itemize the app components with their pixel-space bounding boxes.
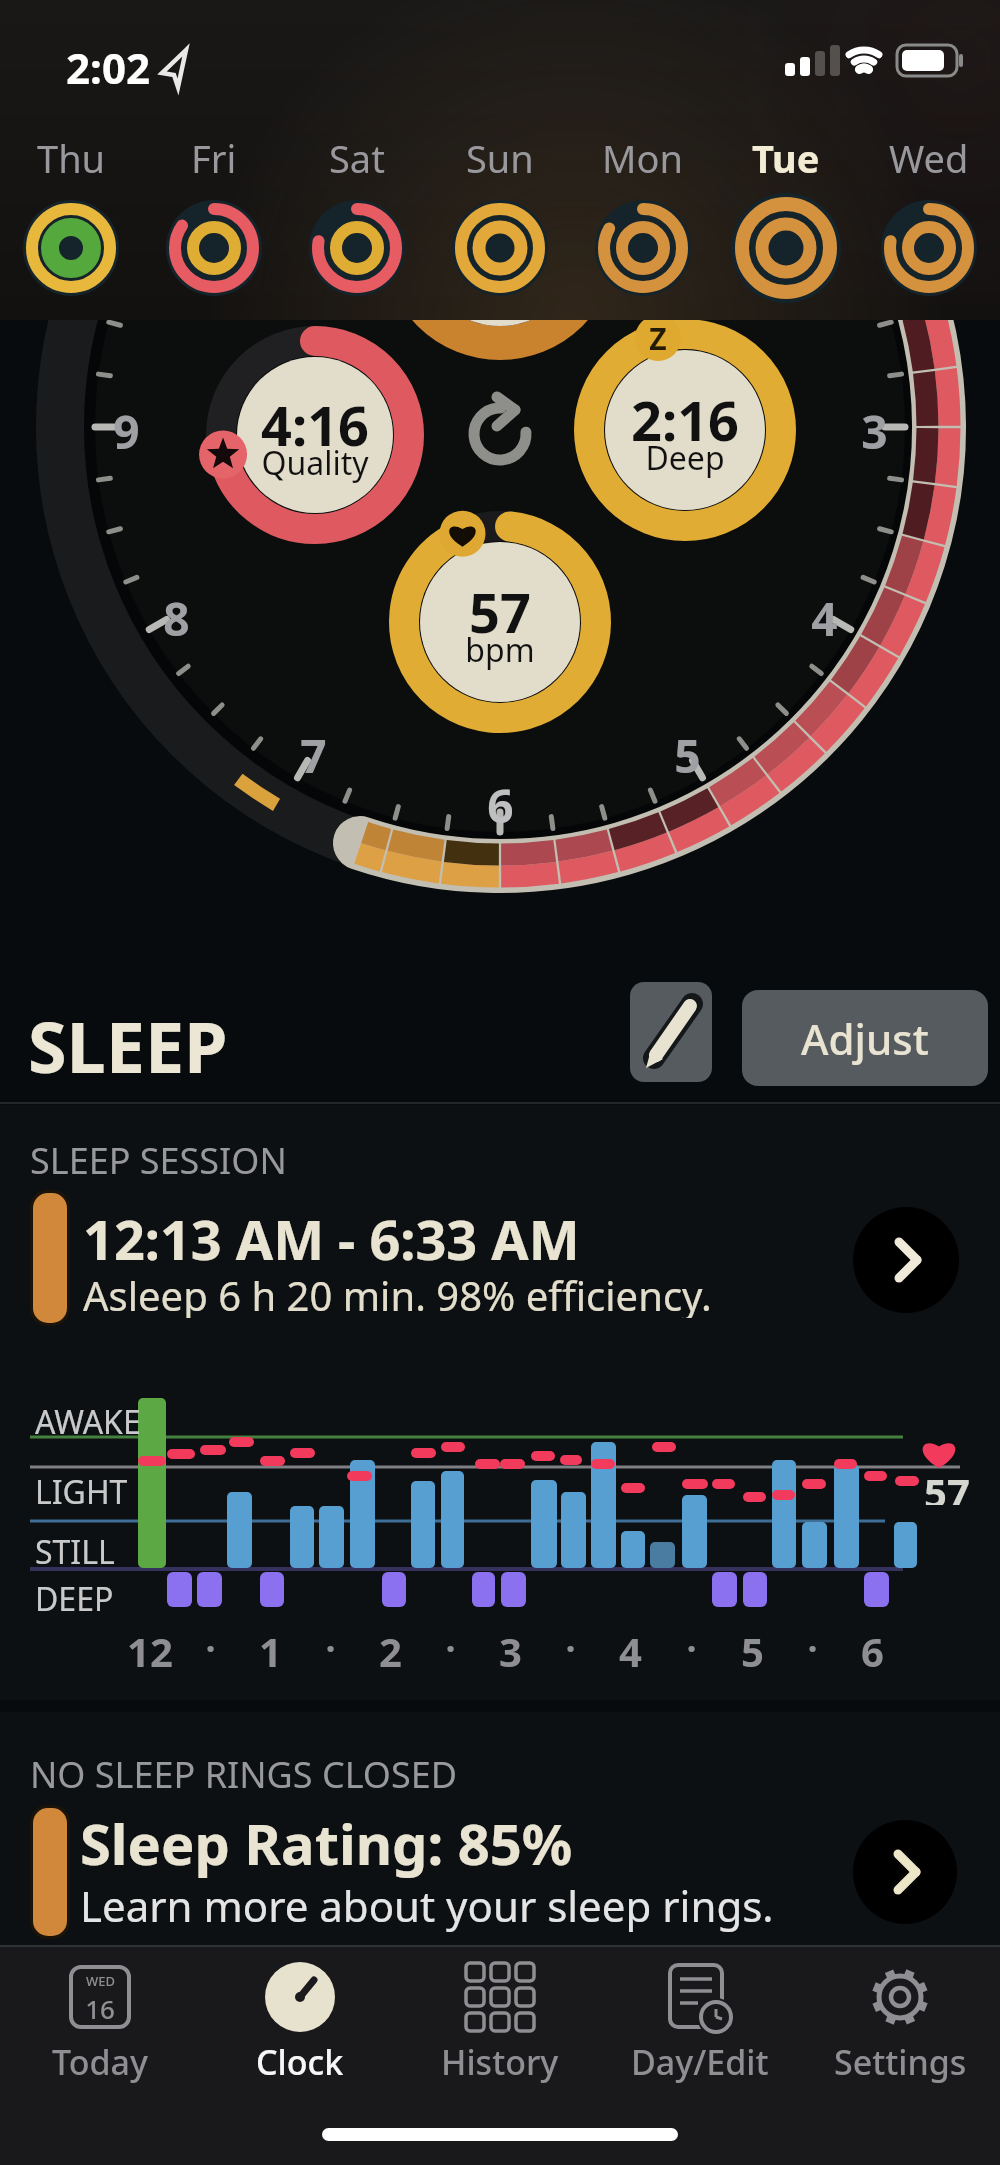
staticText: STILL [35,1530,115,1566]
staticText: Day/Edit [631,2039,769,2085]
staticText: 5 [674,724,701,778]
button[interactable]: Mon [571,132,714,304]
staticText: SLEEP [28,998,228,1082]
staticText: · [445,1624,456,1672]
button[interactable]: 12:13 AM - 6:33 AM [20,1180,980,1335]
staticText: 9 [113,400,140,454]
staticText: 6 [487,774,514,828]
button[interactable] [630,982,712,1082]
staticText: Sat [329,132,385,184]
button[interactable]: Sat [285,132,428,304]
staticText: AWAKE [35,1400,141,1436]
button[interactable]: Adjust [742,990,988,1086]
staticText: · [565,1624,576,1672]
staticText: 12 [127,1624,173,1672]
button[interactable]: Sleep Rating: 85% [20,1795,980,1945]
staticText: bpm [465,628,535,672]
staticText: 4:16 [261,388,369,448]
staticText: Thu [37,132,106,184]
staticText: DEEP [35,1577,114,1613]
staticText: · [325,1624,336,1672]
staticText: SLEEP SESSION [30,1136,287,1180]
button[interactable]: History [400,1945,600,2085]
staticText: · [205,1624,216,1672]
staticText: Asleep 6 h 20 min. 98% efficiency. [83,1268,712,1318]
staticText: Tue [752,132,820,184]
staticText: Fri [191,132,237,184]
staticText: NO SLEEP RINGS CLOSED [30,1750,457,1794]
staticText: 2:02 [66,39,150,89]
staticText: · [807,1624,818,1672]
staticText: 4 [619,1624,642,1672]
staticText: Quality [261,441,369,485]
button[interactable]: Fri [142,132,285,304]
staticText: WED [86,1972,115,1990]
staticText: · [686,1624,697,1672]
staticText: 57 [924,1465,970,1505]
staticText: 5 [741,1624,764,1672]
staticText: Clock [256,2039,344,2085]
staticText: 57 [469,575,531,635]
staticText: 7 [300,724,327,778]
staticText: Settings [834,2039,967,2085]
staticText: Mon [602,132,683,184]
staticText: Learn more about your sleep rings. [80,1877,774,1933]
staticText: 2:16 [631,383,739,443]
staticText: 12:13 AM - 6:33 AM [83,1202,580,1262]
staticText: 2 [379,1624,402,1672]
button[interactable]: WED [0,1945,200,2085]
staticText: LIGHT [35,1470,128,1506]
staticText: Wed [889,132,969,184]
staticText: 4 [811,587,838,641]
staticText: Today [52,2039,148,2085]
button[interactable]: Settings [800,1945,1000,2085]
staticText: 1 [259,1624,282,1672]
staticText: 6 [861,1624,884,1672]
button[interactable]: Wed [857,132,1000,304]
button[interactable]: Sun [428,132,571,304]
staticText: Sun [466,132,534,184]
button[interactable]: Day/Edit [600,1945,800,2085]
staticText: 3 [499,1624,522,1672]
staticText: Z [649,318,667,358]
staticText: Deep [645,436,725,480]
staticText: 16 [85,1991,115,2021]
staticText: History [441,2039,559,2085]
staticText: Adjust [801,1010,929,1067]
button[interactable]: Clock [200,1945,400,2085]
staticText: 3 [861,400,888,454]
staticText: Sleep Rating: 85% [80,1805,573,1881]
button[interactable]: Thu [0,132,142,304]
button[interactable]: Tue [714,132,857,304]
staticText: 8 [163,587,190,641]
